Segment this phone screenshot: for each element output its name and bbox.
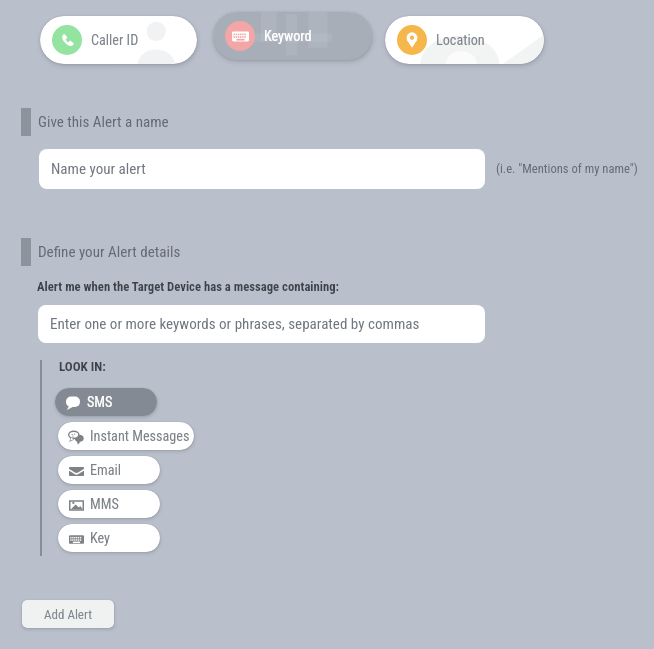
staticText: LOOK IN: (59, 359, 106, 374)
button[interactable]: Location (385, 16, 544, 64)
button[interactable]: Instant Messages (58, 422, 194, 450)
button[interactable]: Keyword (213, 12, 372, 60)
button[interactable]: Caller ID (40, 16, 197, 64)
staticText: SMS (87, 394, 113, 411)
staticText: MMS (90, 496, 119, 513)
button[interactable]: Enter one or more keywords or phrases, s… (38, 305, 485, 343)
staticText: Define your Alert details (38, 243, 181, 261)
button[interactable]: SMS (55, 388, 157, 416)
staticText: Key (90, 530, 111, 547)
staticText: Add Alert (44, 607, 93, 622)
staticText: Alert me when the Target Device has a me… (37, 279, 340, 294)
staticText: (i.e. "Mentions of my name") (496, 161, 638, 176)
staticText: Location (436, 32, 485, 49)
staticText: Email (90, 462, 122, 479)
staticText: Caller ID (91, 32, 139, 49)
button[interactable]: Email (58, 456, 160, 484)
button[interactable]: MMS (58, 490, 160, 518)
button[interactable]: Add Alert (22, 600, 114, 628)
staticText: Instant Messages (90, 428, 190, 445)
staticText: Give this Alert a name (38, 113, 169, 131)
button[interactable]: Name your alert (39, 149, 485, 189)
button[interactable]: Key (58, 524, 160, 552)
staticText: Name your alert (51, 160, 146, 178)
staticText: Keyword (264, 28, 312, 45)
staticText: Enter one or more keywords or phrases, s… (50, 315, 420, 333)
